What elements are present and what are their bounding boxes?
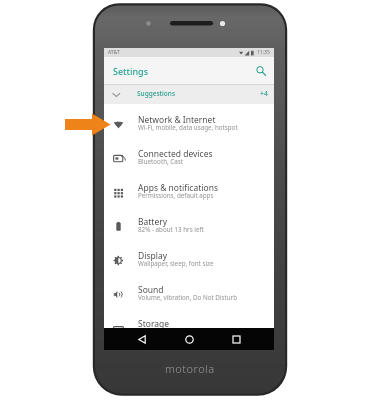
staticText: Storage [138,318,170,330]
button[interactable]: Battery [104,209,274,243]
staticText: AT&T [108,49,120,56]
button[interactable]: Search [253,63,269,79]
button[interactable]: Network & Internet [104,107,274,141]
staticText: 11:35 [257,49,270,56]
staticText: motorola [165,361,215,376]
button[interactable]: Display [104,243,274,277]
button[interactable]: Home [179,329,199,349]
button[interactable]: Suggestions [104,85,274,104]
staticText: Apps & notifications [138,182,218,194]
staticText: +4 [260,89,268,98]
staticText: Wi-Fi, mobile, data usage, hotspot [138,123,238,132]
button[interactable]: Storage [104,311,274,345]
staticText: Sound [138,284,164,296]
staticText: 82% - about 13 hrs left [138,225,204,234]
staticText: Network & Internet [138,114,216,126]
staticText: Connected devices [138,148,213,160]
button[interactable]: Recent apps [226,329,246,349]
staticText: Battery [138,216,168,228]
staticText: Bluetooth, Cast [138,157,184,166]
staticText: Wallpaper, sleep, font size [138,259,214,268]
staticText: Display [138,250,167,262]
button[interactable]: Apps & notifications [104,175,274,209]
button[interactable]: Sound [104,277,274,311]
button[interactable]: Back [132,329,152,349]
staticText: Settings [113,65,149,77]
button[interactable]: Connected devices [104,141,274,175]
staticText: Permissions, default apps [138,191,214,200]
staticText: Suggestions [137,89,176,98]
staticText: Volume, vibration, Do Not Disturb [138,293,238,302]
